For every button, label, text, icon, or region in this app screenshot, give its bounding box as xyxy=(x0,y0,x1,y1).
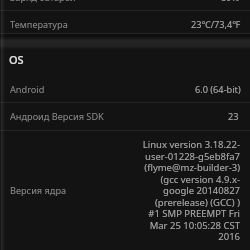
button[interactable]: Версия ядра xyxy=(0,131,250,250)
staticText: Температура xyxy=(10,18,68,31)
staticText: 6.0 (64-bit) xyxy=(195,83,241,96)
staticText: 23℃/73,4℉ xyxy=(191,18,241,31)
button[interactable]: Android xyxy=(0,78,250,101)
staticText: Linux version 3.18.22- xyxy=(138,138,240,151)
staticText: 23 xyxy=(228,110,239,123)
staticText: OS xyxy=(9,52,24,67)
staticText: Версия ядра xyxy=(10,184,67,197)
staticText: (flyme@mz-builder-3) xyxy=(138,161,240,174)
staticText: user-01228-g5eb8fa7 xyxy=(138,150,240,163)
staticText: (gcc version 4.9.x- xyxy=(138,173,240,186)
staticText: Андроид Версия SDK xyxy=(10,110,104,123)
staticText: 89% xyxy=(221,0,240,4)
staticText: (prerelease) (GCC) ) xyxy=(138,196,240,209)
staticText: google 20140827 xyxy=(138,184,240,197)
button[interactable]: Заряд батареи xyxy=(0,0,250,9)
button[interactable]: Температура xyxy=(0,13,250,36)
button[interactable]: Андроид Версия SDK xyxy=(0,105,250,128)
staticText: #1 SMP PREEMPT Fri xyxy=(138,207,240,220)
staticText: Заряд батареи xyxy=(10,0,76,4)
staticText: 2016 xyxy=(138,230,240,243)
staticText: Android xyxy=(10,83,45,96)
staticText: Mar 25 10:05:28 CST xyxy=(138,219,240,232)
